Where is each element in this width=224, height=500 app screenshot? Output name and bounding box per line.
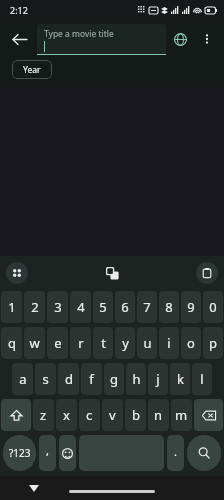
staticText: z — [40, 406, 47, 424]
button[interactable]: 6 — [115, 291, 135, 323]
button[interactable]: j — [148, 363, 168, 395]
button[interactable]: ?123 — [3, 435, 36, 471]
button[interactable]: a — [12, 363, 33, 395]
staticText: e — [54, 334, 62, 352]
button[interactable]: k — [170, 363, 190, 395]
staticText: c — [86, 406, 93, 424]
staticText: Type a movie title — [44, 28, 114, 40]
staticText: h — [132, 370, 141, 388]
button[interactable]: z — [33, 399, 54, 431]
staticText: v — [109, 406, 116, 424]
button[interactable]: Emoji — [59, 435, 76, 471]
button[interactable]: Keyboard toolbar — [6, 262, 28, 284]
button[interactable]: o — [181, 327, 201, 359]
staticText: 2:12 — [10, 4, 28, 16]
staticText: x — [63, 406, 70, 424]
staticText: 8 — [165, 298, 173, 316]
staticText: d — [65, 370, 73, 388]
button[interactable]: Backspace — [194, 399, 223, 431]
staticText: i — [167, 334, 171, 352]
staticText: f — [89, 370, 94, 388]
button[interactable]: w — [24, 327, 45, 359]
staticText: 2 — [31, 298, 39, 316]
button[interactable]: s — [35, 363, 56, 395]
staticText: a — [19, 370, 27, 388]
button[interactable]: More options — [194, 26, 220, 52]
button[interactable]: Back — [4, 24, 34, 54]
staticText: k — [177, 370, 184, 388]
staticText: n — [154, 406, 163, 424]
button[interactable]: e — [47, 327, 68, 359]
button[interactable]: c — [79, 399, 100, 431]
button[interactable]: Shift — [1, 399, 31, 431]
staticText: 5 — [99, 298, 107, 316]
staticText: l — [200, 370, 204, 388]
button[interactable]: n — [148, 399, 169, 431]
button[interactable]: p — [203, 327, 223, 359]
button[interactable]: h — [126, 363, 146, 395]
staticText: t — [101, 334, 106, 352]
button[interactable]: t — [93, 327, 113, 359]
staticText: s — [42, 370, 49, 388]
staticText: p — [209, 334, 217, 352]
button[interactable]: 0 — [203, 291, 223, 323]
button[interactable]: b — [125, 399, 146, 431]
button[interactable]: Search — [187, 435, 221, 471]
button[interactable]: Type a movie title — [37, 24, 166, 55]
button[interactable]: d — [58, 363, 79, 395]
button[interactable]: 8 — [159, 291, 179, 323]
staticText: Year — [23, 64, 41, 76]
staticText: w — [29, 334, 40, 352]
button[interactable]: r — [70, 327, 91, 359]
staticText: 3 — [54, 298, 62, 316]
staticText: 9 — [187, 298, 195, 316]
button[interactable]: 7 — [137, 291, 157, 323]
staticText: r — [78, 334, 84, 352]
button[interactable]: g — [104, 363, 124, 395]
staticText: m — [175, 406, 188, 424]
button[interactable]: 5 — [93, 291, 113, 323]
button[interactable]: 1 — [1, 291, 22, 323]
button[interactable]: 4 — [70, 291, 91, 323]
button[interactable]: 9 — [181, 291, 201, 323]
button[interactable]: , — [39, 435, 56, 471]
staticText: ?123 — [9, 446, 31, 460]
button[interactable]: i — [159, 327, 179, 359]
staticText: 7 — [143, 298, 151, 316]
button[interactable]: l — [192, 363, 212, 395]
staticText: 0 — [209, 298, 217, 316]
button[interactable]: Clipboard — [196, 262, 218, 284]
button[interactable]: x — [56, 399, 77, 431]
staticText: 4 — [77, 298, 85, 316]
staticText: , — [46, 443, 49, 458]
staticText: o — [187, 334, 195, 352]
button[interactable]: f — [81, 363, 102, 395]
button[interactable]: u — [137, 327, 157, 359]
staticText: u — [143, 334, 152, 352]
button[interactable]: 3 — [47, 291, 68, 323]
staticText: q — [8, 334, 16, 352]
button[interactable]: y — [115, 327, 135, 359]
staticText: j — [156, 370, 160, 388]
button[interactable]: Year — [12, 60, 52, 79]
button[interactable]: Language — [166, 25, 194, 53]
button[interactable]: 2 — [24, 291, 45, 323]
staticText: b — [132, 406, 140, 424]
staticText: g — [110, 370, 118, 388]
staticText: 6 — [121, 298, 129, 316]
staticText: . — [174, 444, 177, 459]
button[interactable]: Hide keyboard — [25, 479, 43, 497]
button[interactable]: . — [167, 435, 184, 471]
button[interactable]: Translate — [101, 262, 123, 284]
button[interactable]: v — [102, 399, 123, 431]
staticText: y — [122, 334, 129, 352]
button[interactable]: q — [1, 327, 22, 359]
button[interactable]: m — [171, 399, 192, 431]
staticText: 1 — [8, 298, 16, 316]
